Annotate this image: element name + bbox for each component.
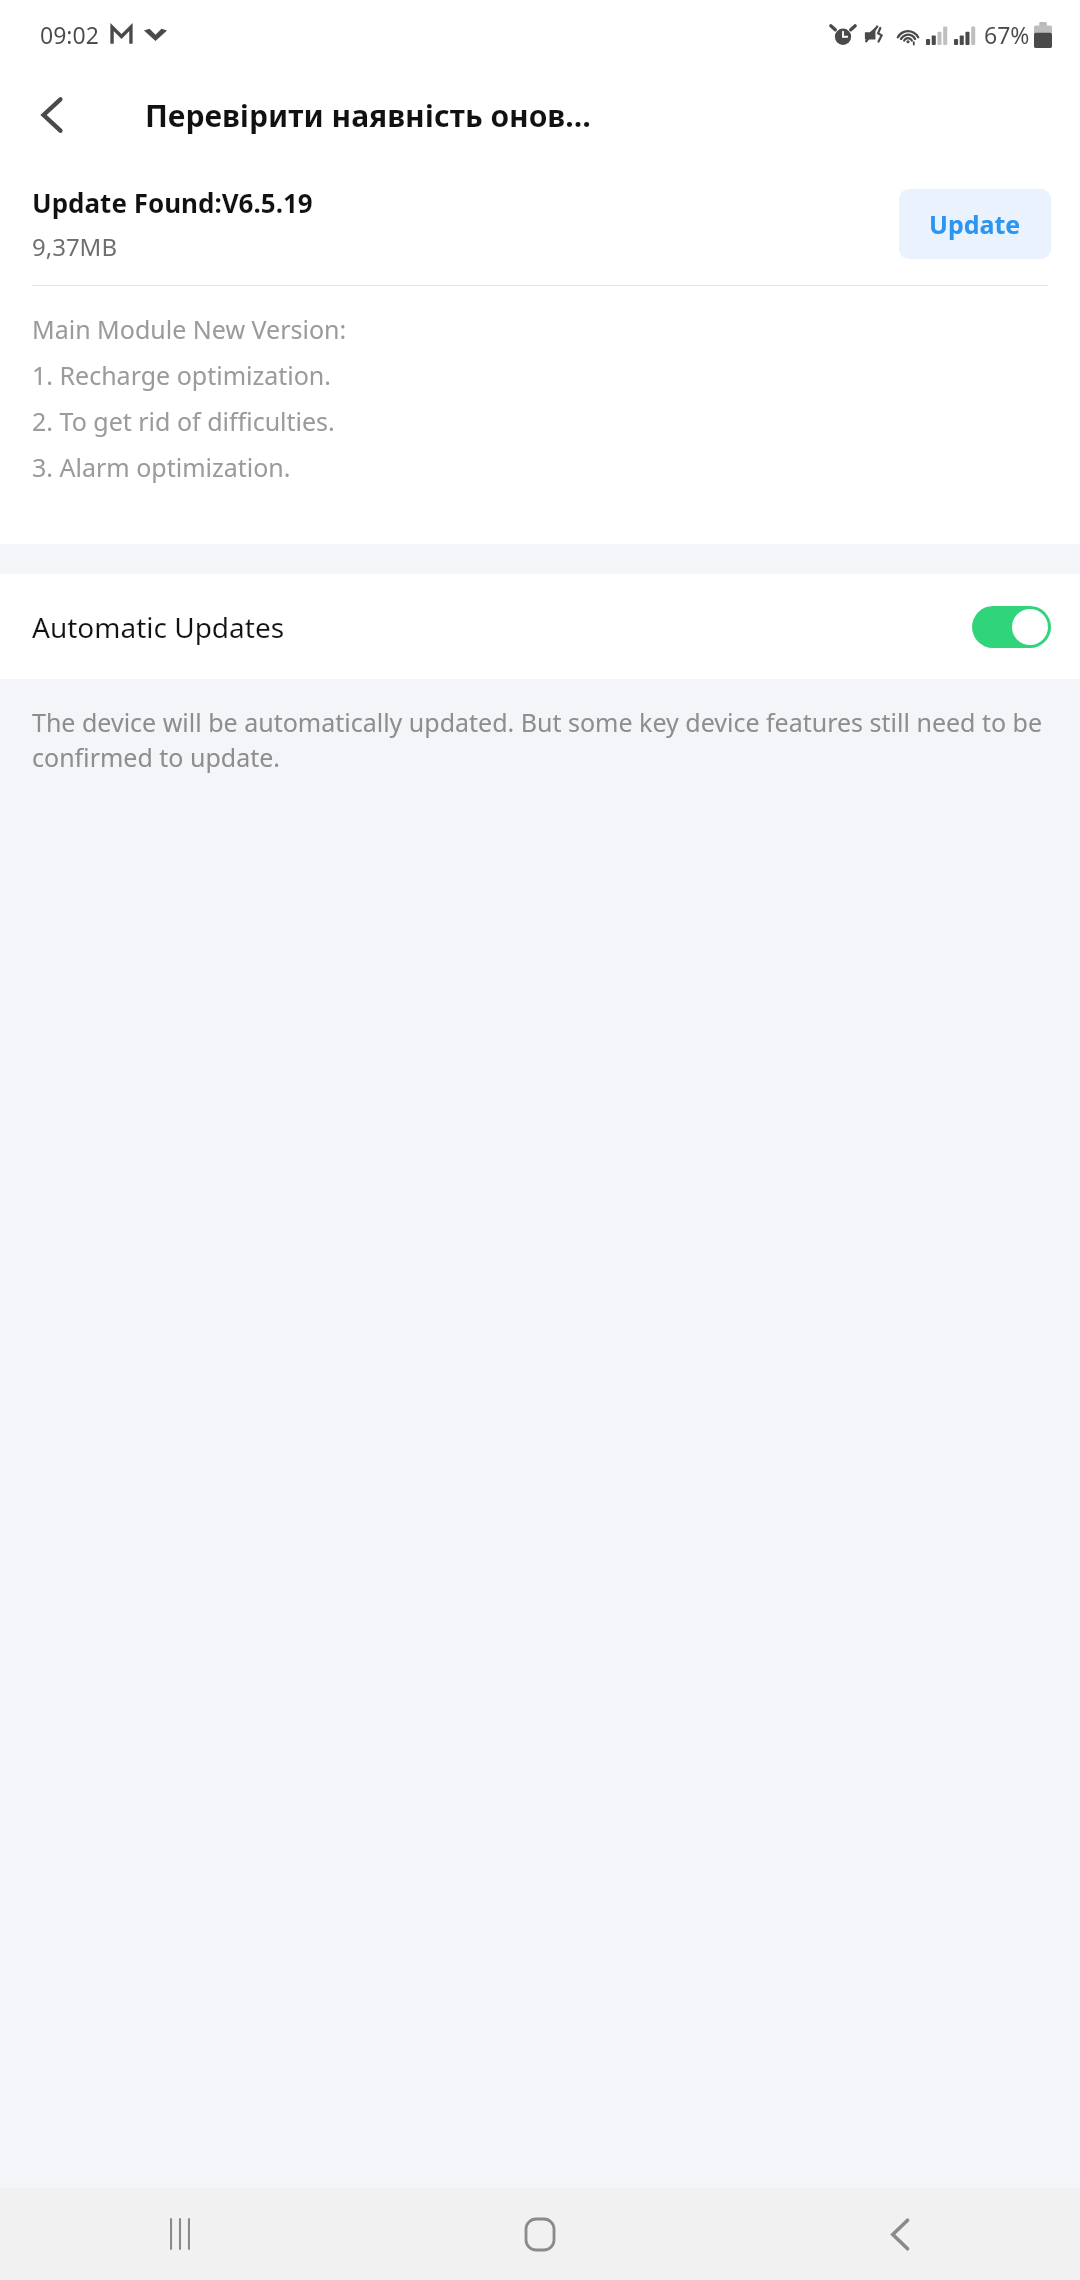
staticText: Main Module New Version: — [32, 312, 347, 346]
staticText: The device will be automatically updated… — [32, 705, 1044, 775]
staticText: 67% — [984, 19, 1030, 50]
button[interactable]: Recents — [0, 2188, 360, 2280]
staticText: 9,37MB — [32, 230, 117, 263]
staticText: Update — [929, 207, 1021, 241]
button[interactable]: Update — [899, 189, 1051, 259]
staticText: Automatic Updates — [32, 608, 972, 646]
button[interactable]: Automatic Updates — [0, 574, 1080, 679]
button[interactable]: Back — [22, 85, 82, 145]
button[interactable]: Back — [720, 2188, 1080, 2280]
button[interactable]: Home — [360, 2188, 720, 2280]
staticText: Update Found:V6.5.19 — [32, 185, 313, 220]
staticText: 1. Recharge optimization. — [32, 358, 332, 392]
staticText: 2. To get rid of difficulties. — [32, 404, 335, 438]
staticText: 09:02 — [40, 19, 99, 50]
staticText: Перевірити наявність онов… — [145, 95, 591, 136]
staticText: 3. Alarm optimization. — [32, 450, 291, 484]
button[interactable]: Automatic Updates toggle — [972, 606, 1051, 648]
